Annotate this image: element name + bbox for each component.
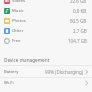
staticText: 22.6 GB <box>70 0 87 4</box>
staticText: Music <box>12 8 24 14</box>
button[interactable]: Photos <box>0 16 92 26</box>
button[interactable]: Free <box>0 36 92 46</box>
staticText: Photos <box>12 18 26 24</box>
button[interactable]: Music <box>0 6 92 16</box>
staticText: Other <box>12 28 24 34</box>
staticText: 60.5 GB <box>70 18 87 24</box>
staticText: Free <box>12 38 21 44</box>
button[interactable]: Videos <box>0 0 92 6</box>
button[interactable]: Other <box>0 26 92 36</box>
staticText: Battery <box>4 69 19 75</box>
staticText: Wi-Fi <box>4 80 14 86</box>
button[interactable]: Battery <box>0 66 92 77</box>
staticText: 99% (Discharging) <box>45 69 84 75</box>
staticText: 0.0 KB <box>73 8 87 14</box>
staticText: 2.7 GB <box>73 28 87 34</box>
button[interactable]: Wi-Fi <box>0 77 92 88</box>
staticText: Device management <box>4 57 50 63</box>
staticText: 104.7 GB <box>68 38 87 44</box>
staticText: Videos <box>12 0 26 4</box>
